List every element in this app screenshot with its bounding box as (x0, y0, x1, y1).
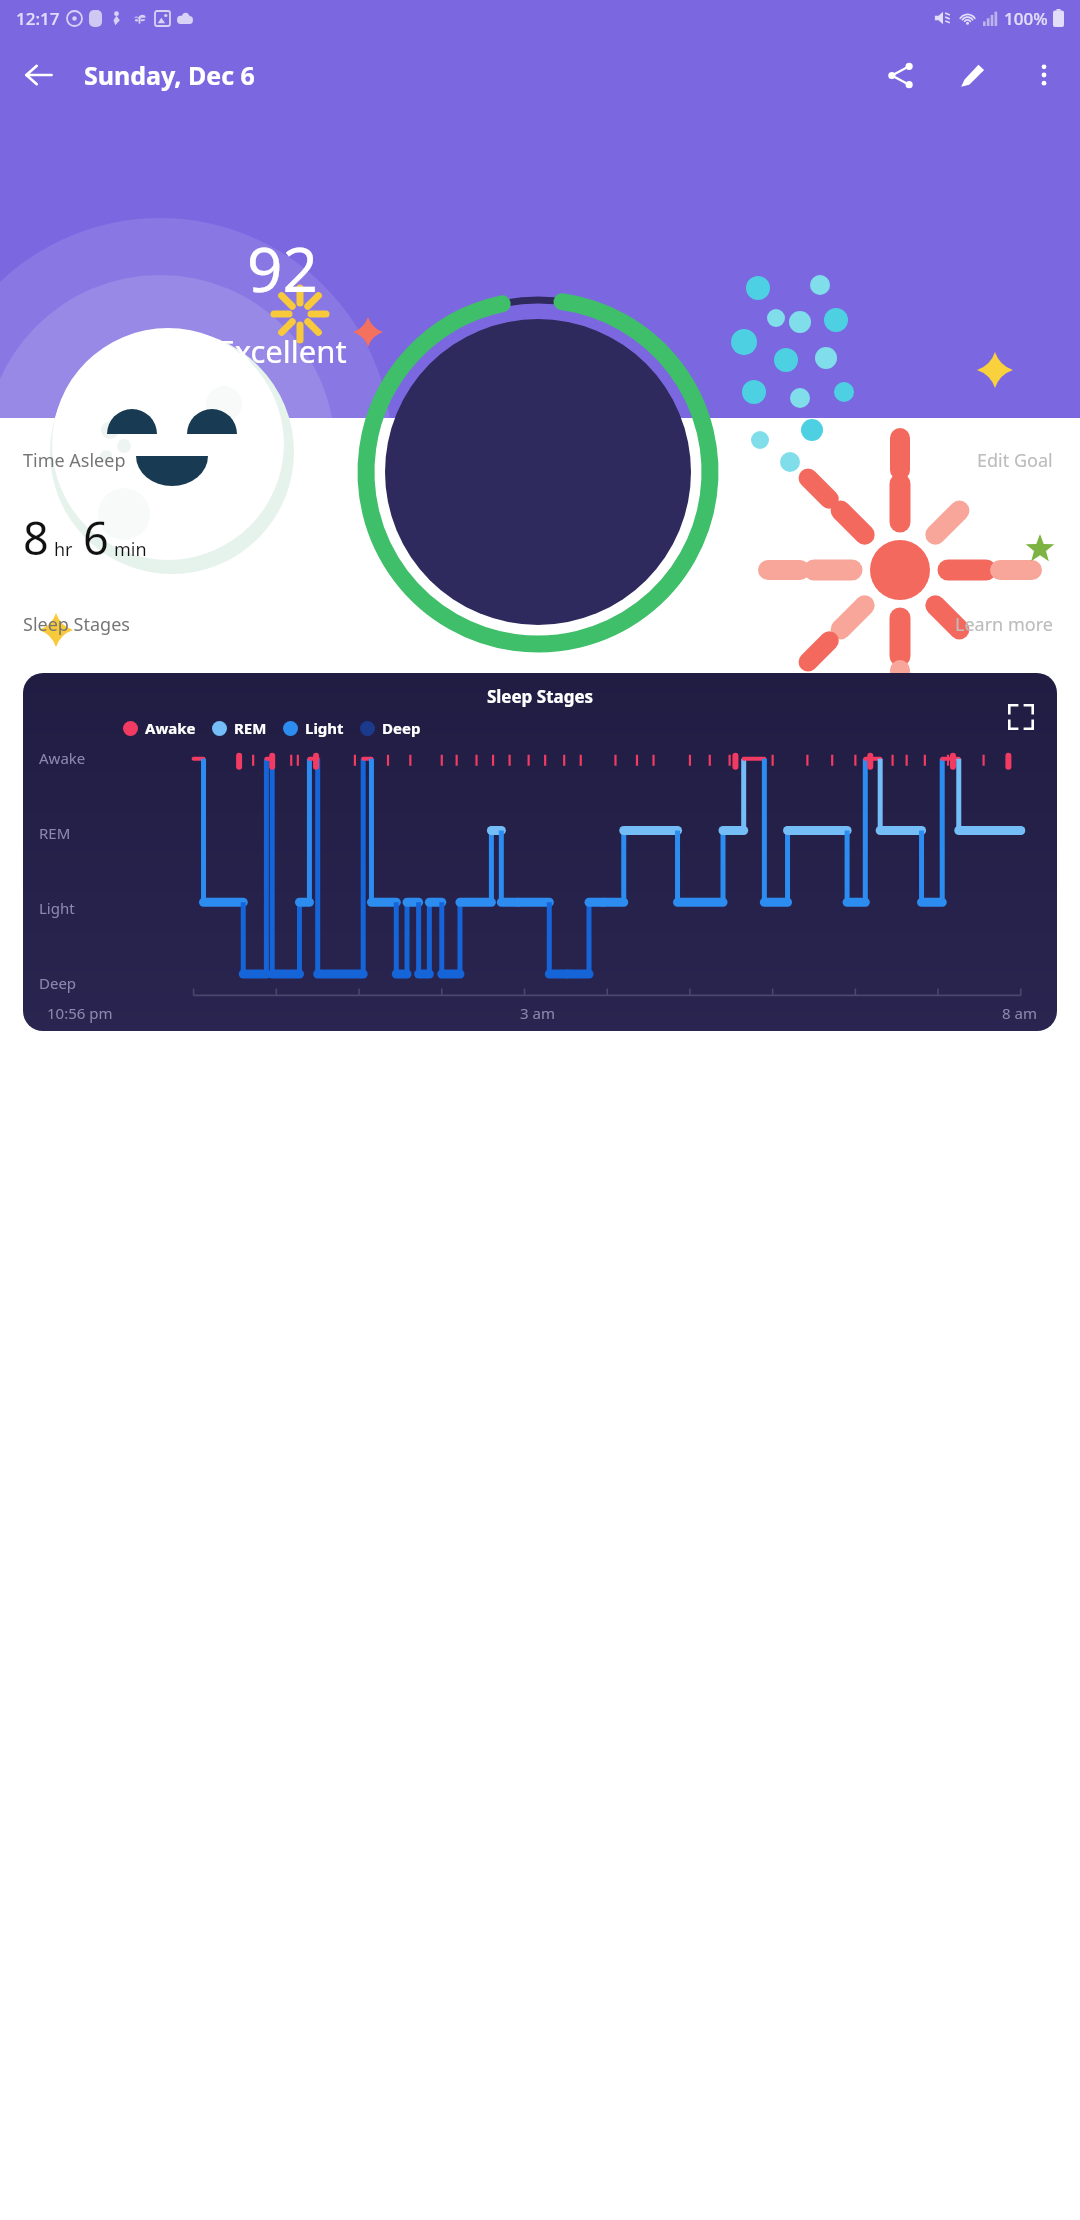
button[interactable]: Light (283, 718, 344, 738)
staticText: hr (54, 537, 73, 562)
button[interactable]: Awake (123, 718, 196, 738)
staticText: Edit Goal (977, 448, 1053, 473)
staticText: 10:56 pm (47, 1003, 113, 1023)
button[interactable]: Edit Goal (973, 444, 1057, 477)
staticText: Sunday, Dec 6 (84, 58, 255, 92)
staticText: Deep (382, 718, 421, 738)
staticText: 6 (83, 507, 109, 568)
button[interactable]: Share (864, 39, 936, 111)
button[interactable]: More options (1008, 39, 1080, 111)
staticText: Learn more (955, 612, 1053, 637)
button[interactable]: Edit (936, 39, 1008, 111)
staticText: Excellent (200, 330, 364, 372)
staticText: REM (39, 823, 71, 843)
staticText: 8 (23, 507, 49, 568)
button[interactable]: REM (212, 718, 267, 738)
staticText: 92 (247, 226, 318, 310)
staticText: Light (39, 898, 75, 918)
staticText: Sleep Stages (23, 685, 1057, 708)
staticText: 8 am (1002, 1003, 1037, 1023)
button[interactable]: Learn more (951, 608, 1057, 641)
staticText: min (114, 537, 147, 562)
staticText: 100% (1004, 7, 1048, 30)
staticText: Awake (39, 748, 86, 768)
staticText: Awake (145, 718, 196, 738)
button[interactable]: Back (0, 36, 78, 114)
staticText: Time Asleep (23, 448, 126, 473)
staticText: REM (234, 718, 267, 738)
staticText: Sleep Stages (23, 612, 130, 637)
staticText: Deep (39, 973, 77, 993)
button[interactable]: Deep (360, 718, 421, 738)
staticText: 12:17 (16, 7, 60, 30)
button[interactable]: Fullscreen (1003, 699, 1039, 735)
staticText: 3 am (520, 1003, 555, 1023)
button[interactable]: Sleep Stages (23, 673, 1057, 1031)
staticText: Light (305, 718, 344, 738)
